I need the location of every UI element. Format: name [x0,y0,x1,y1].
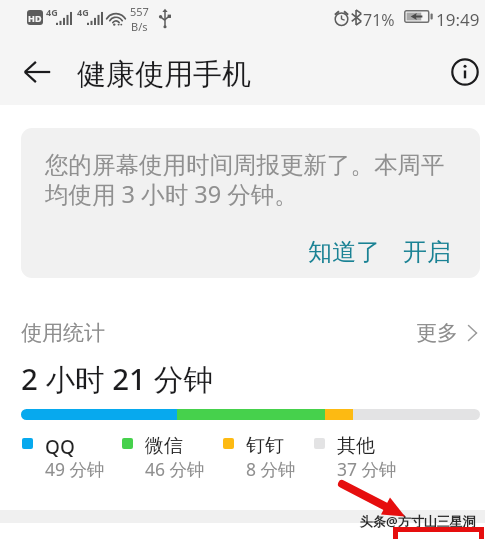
button[interactable]: 您的屏幕使用时间周报更新了。本周平均使用 3 小时 39 分钟。 [21,128,480,278]
staticText: 更多 [416,320,458,346]
staticText: 557 [130,4,149,19]
button[interactable]: QQ [22,434,110,480]
staticText: 知道了 [308,237,380,267]
staticText: 37 分钟 [337,457,397,481]
staticText: 4G [46,6,58,18]
staticText: 其他 [337,434,375,458]
button[interactable]: 其他 [314,434,402,480]
staticText: 8 分钟 [246,457,296,481]
button[interactable]: 知道了 [299,229,389,275]
button[interactable]: Back [20,54,55,89]
staticText: 健康使用手机 [77,56,251,93]
staticText: B/s [131,19,148,34]
button[interactable]: 开启 [394,229,460,275]
button[interactable]: 微信 [122,434,210,480]
staticText: QQ [45,434,75,460]
staticText: 2 小时 21 分钟 [21,358,213,398]
staticText: 头条@方寸山三星洞 [360,512,476,530]
button[interactable]: Info [447,54,483,90]
button[interactable]: 钉钉 [223,434,311,480]
staticText: 49 分钟 [45,457,105,481]
staticText: 钉钉 [246,434,284,458]
staticText: 开启 [403,237,451,267]
button[interactable]: 使用统计 [0,316,485,350]
staticText: 19:49 [436,8,480,31]
staticText: 您的屏幕使用时间周报更新了。本周平均使用 3 小时 39 分钟。 [45,150,460,210]
staticText: 71% [363,9,395,31]
staticText: HD [28,12,42,24]
staticText: 使用统计 [21,320,105,346]
staticText: 微信 [145,434,183,458]
staticText: 46 分钟 [145,457,205,481]
staticText: 4G [77,6,89,18]
